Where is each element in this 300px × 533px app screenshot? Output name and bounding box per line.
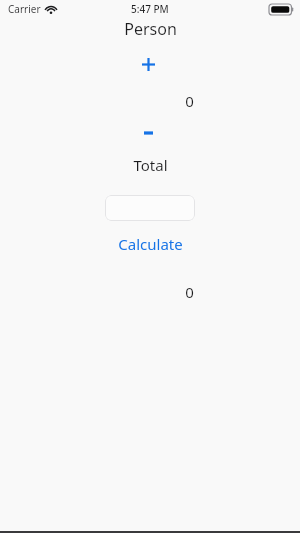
button[interactable]: Calculate	[112, 232, 189, 256]
button[interactable]: Remove person	[138, 125, 158, 141]
staticText: 5:47 PM	[131, 2, 169, 16]
staticText: Person	[124, 18, 177, 38]
button[interactable]: Total input field	[105, 195, 195, 221]
staticText: 0	[185, 91, 194, 109]
staticText: Carrier	[8, 2, 41, 16]
staticText: Total	[133, 155, 168, 175]
button[interactable]: Add person	[138, 54, 158, 74]
staticText: Calculate	[118, 234, 183, 254]
staticText: 0	[185, 282, 194, 300]
